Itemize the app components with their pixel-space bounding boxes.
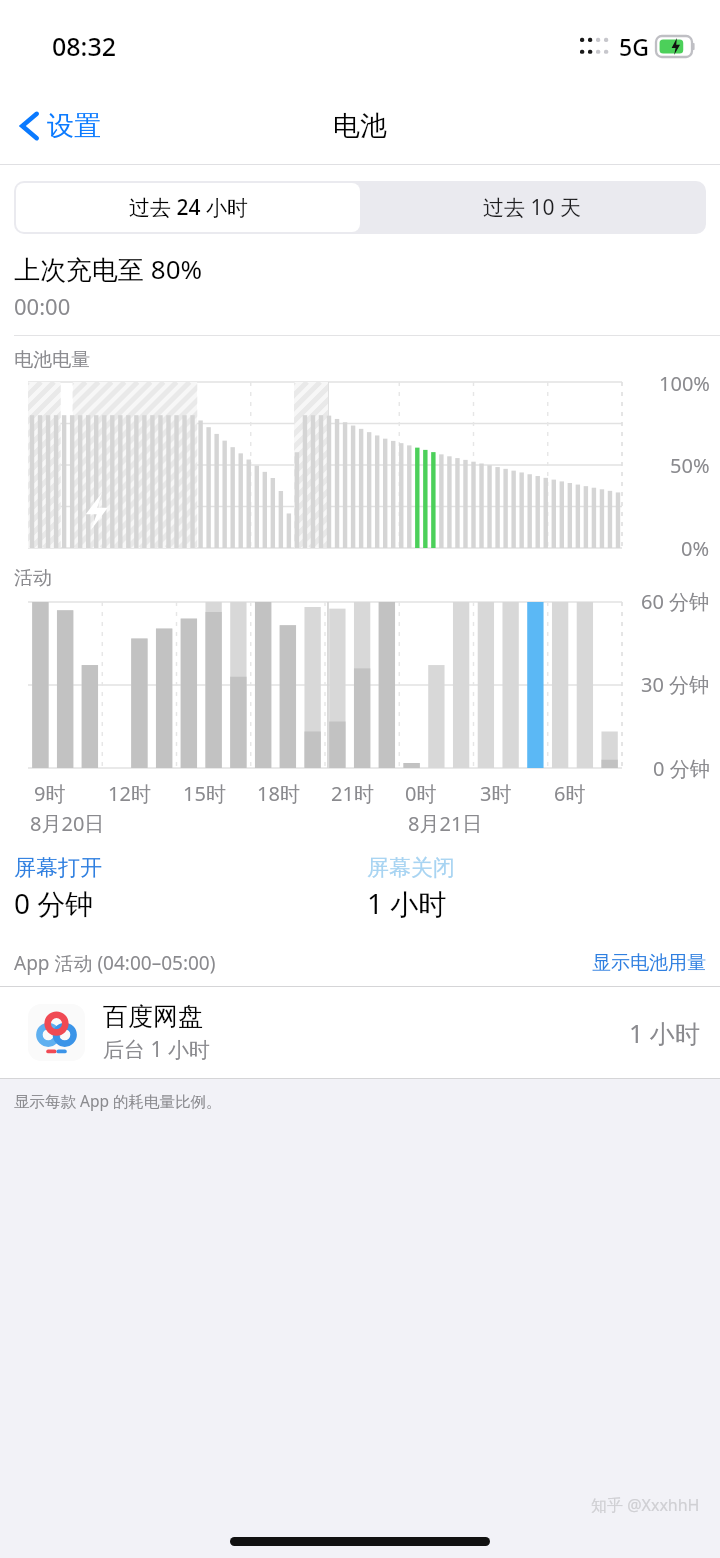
staticText: 1 小时 xyxy=(629,1016,700,1050)
staticText: 显示每款 App 的耗电量比例。 xyxy=(14,1090,222,1111)
staticText: 0 分钟 xyxy=(14,884,94,922)
staticText: 6时 xyxy=(554,780,586,807)
staticText: 5G xyxy=(619,31,649,62)
staticText: 后台 1 小时 xyxy=(103,1035,210,1064)
staticText: App 活动 (04:00–05:00) xyxy=(14,950,592,976)
button[interactable]: 过去 10 天 xyxy=(360,183,704,232)
staticText: 12时 xyxy=(108,780,151,807)
staticText: 活动 xyxy=(14,566,52,590)
staticText: 3时 xyxy=(480,780,512,807)
staticText: 知乎 @XxxhhH xyxy=(591,1494,700,1516)
staticText: 百度网盘 xyxy=(103,1001,203,1032)
staticText: 9时 xyxy=(34,780,66,807)
staticText: 1 小时 xyxy=(367,884,447,922)
staticText: 上次充电至 80% xyxy=(14,251,203,287)
staticText: 设置 xyxy=(47,109,101,143)
staticText: 100% xyxy=(659,370,710,397)
button[interactable]: 过去 24 小时 xyxy=(16,183,360,232)
staticText: 过去 10 天 xyxy=(483,193,581,222)
staticText: 屏幕打开 xyxy=(14,854,102,882)
staticText: 60 分钟 xyxy=(641,588,710,615)
staticText: 08:32 xyxy=(52,29,117,63)
staticText: 显示电池用量 xyxy=(592,951,706,975)
staticText: 0% xyxy=(681,535,710,562)
staticText: 屏幕关闭 xyxy=(367,854,455,882)
staticText: 8月21日 xyxy=(408,810,483,837)
staticText: 电池 xyxy=(333,109,387,143)
staticText: 30 分钟 xyxy=(641,671,710,698)
staticText: 21时 xyxy=(331,780,374,807)
staticText: 8月20日 xyxy=(30,810,105,837)
button[interactable]: 设置 xyxy=(14,103,107,149)
button[interactable]: 百度网盘 xyxy=(0,987,720,1078)
staticText: 0 分钟 xyxy=(653,755,710,782)
staticText: 00:00 xyxy=(14,291,71,321)
staticText: 50% xyxy=(670,452,710,479)
staticText: 0时 xyxy=(405,780,437,807)
staticText: 电池电量 xyxy=(14,348,90,372)
staticText: 18时 xyxy=(257,780,300,807)
staticText: 15时 xyxy=(183,780,226,807)
button[interactable]: 显示电池用量 xyxy=(592,951,706,975)
staticText: 过去 24 小时 xyxy=(129,193,248,222)
